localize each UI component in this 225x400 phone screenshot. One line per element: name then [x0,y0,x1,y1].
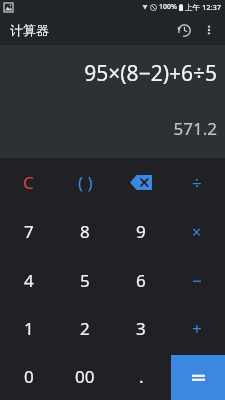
button[interactable]: 6 [113,256,169,304]
staticText: − [192,269,202,292]
button[interactable]: × [169,207,225,256]
button[interactable]: More options [197,18,221,42]
button[interactable]: . [113,352,169,400]
button[interactable]: ÷ [169,158,225,207]
button[interactable]: 00 [57,352,113,400]
staticText: . [139,365,144,388]
button[interactable]: 7 [0,207,57,256]
button[interactable]: 3 [113,304,169,352]
staticText: 计算器 [10,22,49,38]
staticText: 1 [24,317,34,340]
button[interactable]: 9 [113,207,169,256]
button[interactable]: C [0,158,57,207]
button[interactable]: 8 [57,207,113,256]
button[interactable]: 4 [0,256,57,304]
staticText: 上午 12:37 [185,2,222,12]
button[interactable]: + [169,304,225,352]
staticText: ÷ [192,171,202,194]
button[interactable]: History [171,17,197,43]
button[interactable]: 0 [0,352,57,400]
staticText: C [23,171,34,194]
staticText: 100% [159,2,177,12]
staticText: 571.2 [173,117,217,140]
staticText: 6 [136,269,146,292]
staticText: 00 [75,365,95,388]
button[interactable]: 1 [0,304,57,352]
staticText: 4 [24,269,34,292]
staticText: 3 [136,317,146,340]
staticText: × [192,221,202,243]
staticText: 8 [80,220,90,243]
button[interactable]: 2 [57,304,113,352]
staticText: ( ) [78,171,93,194]
staticText: 9 [136,220,146,243]
staticText: + [192,317,202,340]
button[interactable]: ( ) [57,158,113,207]
button[interactable]: 5 [57,256,113,304]
staticText: 2 [80,317,90,340]
button[interactable]: Backspace [113,158,169,207]
button[interactable]: Equals [171,355,225,400]
button[interactable]: − [169,256,225,304]
staticText: 0 [24,365,34,388]
staticText: 95×(8−2)+6÷5 [84,59,217,88]
staticText: 5 [80,269,90,292]
staticText: 7 [24,220,34,243]
